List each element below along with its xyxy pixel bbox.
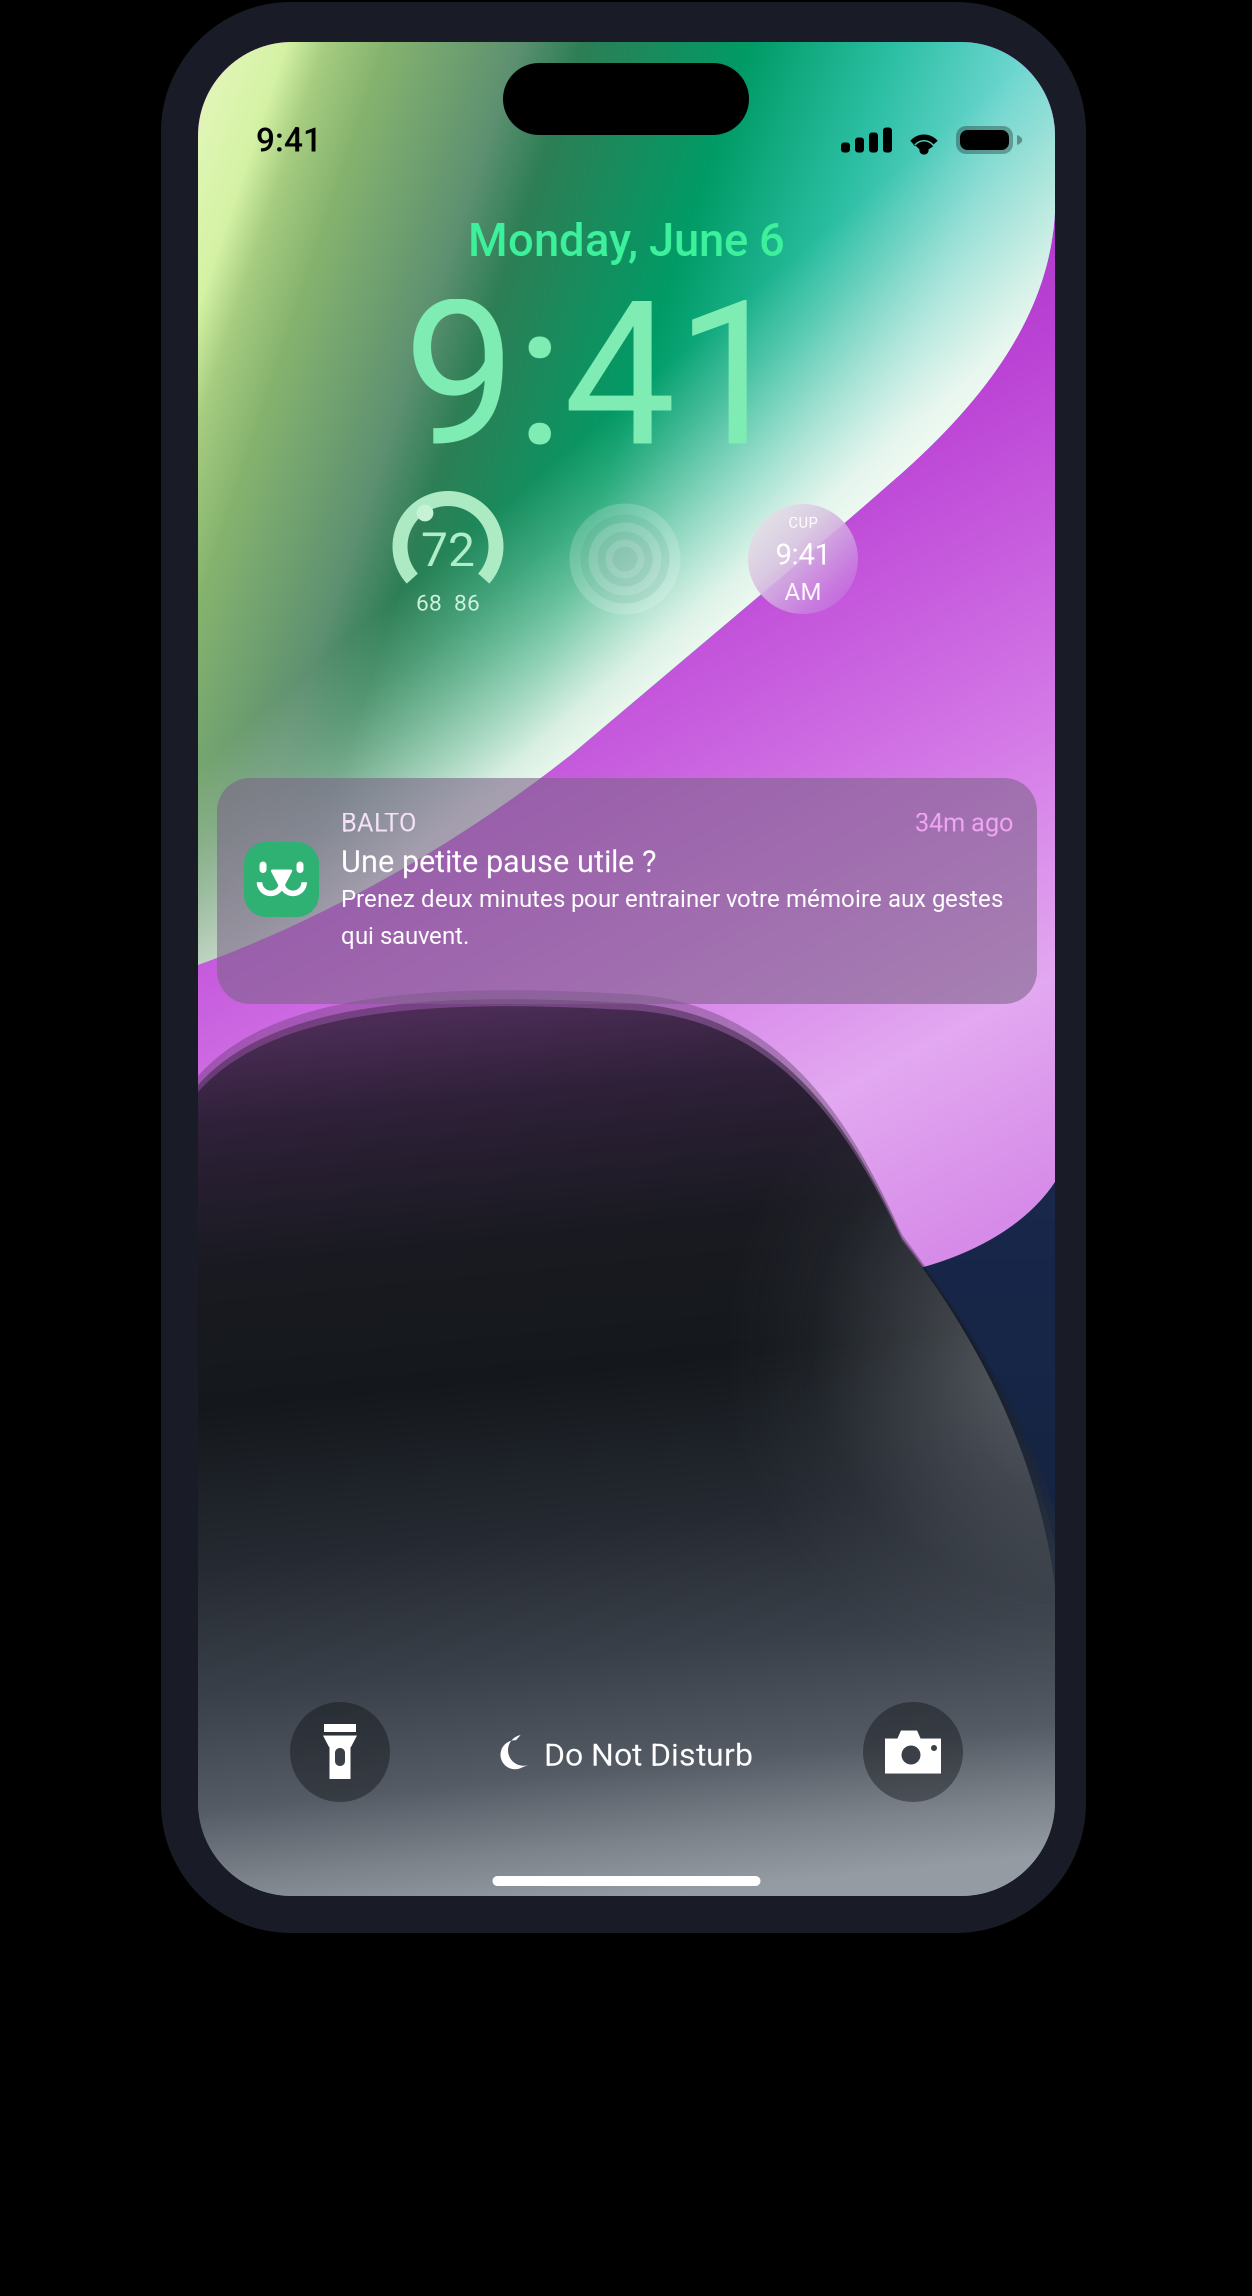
staticText: 9:41 xyxy=(775,537,830,572)
staticText: 9:41 xyxy=(403,258,787,492)
staticText: 72 xyxy=(421,522,475,578)
staticText: 9:41 xyxy=(256,120,322,160)
staticText: CUP xyxy=(788,514,817,531)
button[interactable]: Flashlight xyxy=(290,1702,390,1802)
staticText: qui sauvent. xyxy=(341,922,469,950)
staticText: 34m ago xyxy=(915,808,1013,838)
staticText: AM xyxy=(784,578,821,606)
staticText: Do Not Disturb xyxy=(544,1736,753,1773)
staticText: Une petite pause utile ? xyxy=(341,844,656,880)
staticText: Monday, June 6 xyxy=(468,214,785,267)
staticText: 68 86 xyxy=(416,590,480,616)
button[interactable]: BALTO xyxy=(217,778,1037,1004)
staticText: BALTO xyxy=(341,808,416,838)
button[interactable]: Camera xyxy=(863,1702,963,1802)
staticText: Prenez deux minutes pour entrainer votre… xyxy=(341,885,1003,913)
